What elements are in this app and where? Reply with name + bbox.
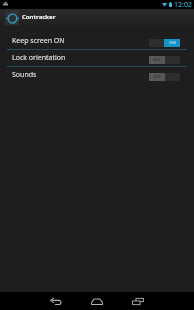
staticText: Keep screen ON: [12, 36, 65, 46]
staticText: ON: [169, 40, 176, 46]
button[interactable]: Lock orientation: [0, 50, 194, 66]
button[interactable]: OFF: [149, 56, 180, 64]
button[interactable]: Back: [42, 292, 70, 310]
button[interactable]: Sounds: [0, 67, 194, 83]
staticText: Sounds: [12, 70, 37, 80]
staticText: OFF: [153, 57, 161, 63]
staticText: 12:02: [174, 0, 192, 9]
button[interactable]: Contracker: [0, 9, 194, 26]
button[interactable]: OFF: [149, 73, 180, 81]
button[interactable]: ON: [149, 39, 180, 47]
button[interactable]: Recent apps: [124, 292, 152, 310]
button[interactable]: Home: [83, 292, 111, 310]
staticText: Lock orientation: [12, 53, 66, 63]
staticText: Contracker: [22, 13, 56, 21]
staticText: OFF: [153, 74, 161, 80]
button[interactable]: Keep screen ON: [0, 33, 194, 49]
